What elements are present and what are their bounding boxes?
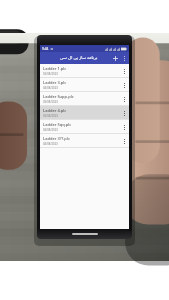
button[interactable]: Ladder 3??.plc <box>40 134 129 147</box>
button[interactable]: Ladder 5qq.plc <box>40 120 129 133</box>
staticText: 04/08/2023 <box>43 86 58 90</box>
button[interactable]: Ladder Supp.plc <box>40 92 129 105</box>
staticText: Ladder 3??.plc <box>43 136 70 141</box>
staticText: 9:44 <box>42 47 49 51</box>
staticText: 04/08/2023 <box>43 142 58 146</box>
staticText: 03/08/2023 <box>43 114 58 118</box>
button[interactable]: Ladder 3.plc <box>40 78 129 91</box>
button[interactable]: Item options <box>120 67 128 75</box>
button[interactable]: Item options <box>120 123 128 131</box>
staticText: 03/08/2023 <box>43 100 58 104</box>
staticText: Ladder 5qq.plc <box>43 122 72 127</box>
button[interactable]: More options <box>120 54 128 62</box>
staticText: 04/08/2023 <box>43 128 58 132</box>
staticText: برنامه ساز پی ال سی <box>60 55 98 61</box>
staticText: Ladder 3.plc <box>43 80 67 85</box>
staticText: Ladder 1.plc <box>43 66 67 71</box>
staticText: Ladder Supp.plc <box>43 94 74 99</box>
staticText: Ladder 4.plc <box>43 108 67 113</box>
button[interactable]: Item options <box>120 95 128 103</box>
button[interactable]: Ladder 4.plc <box>40 106 129 119</box>
button[interactable]: Add <box>110 53 120 63</box>
button[interactable]: Item options <box>120 81 128 89</box>
staticText: 03/08/2023 <box>43 72 58 76</box>
button[interactable]: Ladder 1.plc <box>40 64 129 77</box>
button[interactable]: Item options <box>120 137 128 145</box>
button[interactable]: Item options <box>120 109 128 117</box>
